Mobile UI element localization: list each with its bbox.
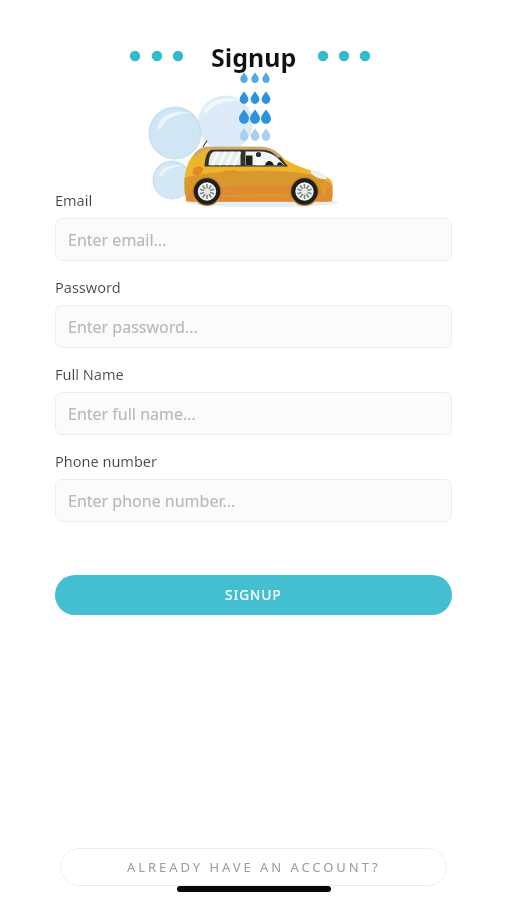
staticText: Phone number [55, 451, 157, 471]
staticText: Enter password... [68, 316, 198, 338]
button[interactable]: Enter phone number... [55, 479, 452, 522]
button[interactable]: Enter password... [55, 305, 452, 348]
staticText: Enter phone number... [68, 490, 236, 512]
button[interactable]: SIGNUP [55, 575, 452, 615]
staticText: ALREADY HAVE AN ACCOUNT? [127, 858, 381, 876]
staticText: Signup [211, 40, 297, 74]
button[interactable]: Enter email... [55, 218, 452, 261]
staticText: Email [55, 190, 93, 210]
button[interactable]: ALREADY HAVE AN ACCOUNT? [60, 848, 447, 886]
staticText: Enter email... [68, 229, 167, 251]
staticText: Password [55, 277, 121, 297]
staticText: SIGNUP [225, 586, 282, 604]
staticText: Enter full name... [68, 403, 196, 425]
button[interactable]: Enter full name... [55, 392, 452, 435]
staticText: Full Name [55, 364, 124, 384]
